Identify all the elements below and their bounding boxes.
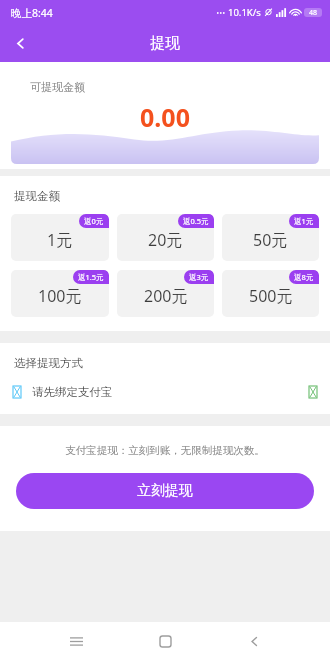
staticText: 返0元 bbox=[84, 216, 104, 226]
button[interactable]: Recents bbox=[60, 625, 92, 657]
staticText: 20元 bbox=[148, 229, 183, 251]
staticText: 支付宝提现：立刻到账，无限制提现次数。 bbox=[0, 444, 330, 457]
staticText: 返1.5元 bbox=[78, 272, 104, 282]
staticText: 10.1K/s bbox=[228, 6, 261, 19]
button[interactable]: Back bbox=[0, 25, 40, 62]
button[interactable]: 立刻提现 bbox=[16, 473, 314, 509]
staticText: 返1元 bbox=[294, 216, 314, 226]
button[interactable]: 500元 bbox=[222, 270, 319, 317]
staticText: 48 bbox=[309, 8, 318, 17]
staticText: 可提现金额 bbox=[30, 80, 85, 94]
staticText: 选择提现方式 bbox=[14, 356, 83, 370]
staticText: 请先绑定支付宝 bbox=[32, 385, 113, 399]
button[interactable]: 50元 bbox=[222, 214, 319, 261]
staticText: 50元 bbox=[253, 229, 288, 251]
staticText: 返3元 bbox=[189, 272, 209, 282]
staticText: 返0.5元 bbox=[183, 216, 209, 226]
staticText: 0.00 bbox=[140, 100, 190, 134]
button[interactable]: Home bbox=[149, 625, 181, 657]
staticText: 立刻提现 bbox=[137, 482, 193, 500]
staticText: 提现金额 bbox=[14, 189, 60, 203]
staticText: 500元 bbox=[249, 285, 293, 307]
staticText: 返8元 bbox=[294, 272, 314, 282]
staticText: 200元 bbox=[144, 285, 188, 307]
button[interactable]: 20元 bbox=[117, 214, 214, 261]
button[interactable]: 请先绑定支付宝 bbox=[0, 370, 330, 414]
button[interactable]: 200元 bbox=[117, 270, 214, 317]
button[interactable]: Back bbox=[238, 625, 270, 657]
staticText: 提现 bbox=[150, 34, 180, 53]
staticText: 100元 bbox=[38, 285, 82, 307]
button[interactable]: 100元 bbox=[11, 270, 109, 317]
button[interactable]: 1元 bbox=[11, 214, 109, 261]
staticText: 1元 bbox=[47, 229, 73, 251]
staticText: 晚上8:44 bbox=[11, 6, 53, 20]
